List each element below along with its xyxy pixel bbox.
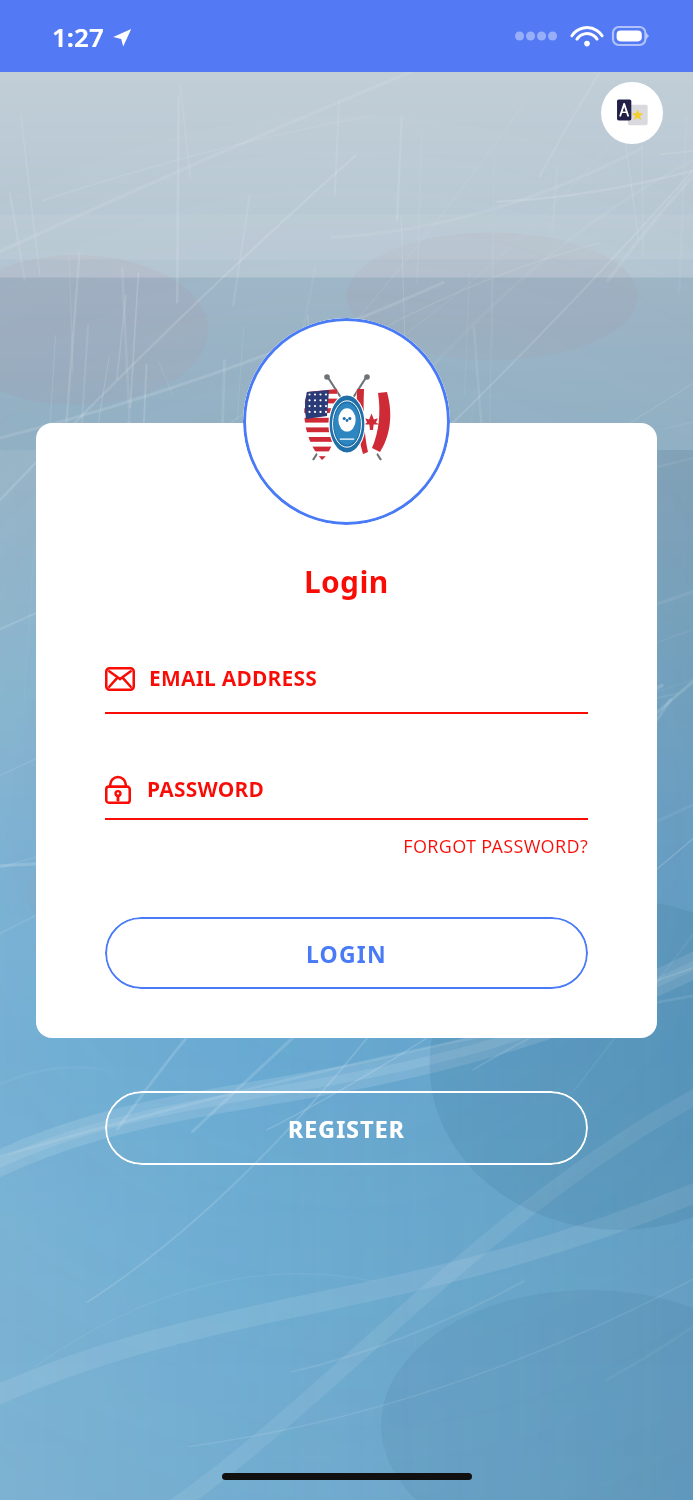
button[interactable]: EMAIL ADDRESS	[105, 664, 588, 714]
staticText: 1:27	[52, 19, 104, 54]
staticText: PASSWORD	[147, 775, 265, 804]
staticText: EMAIL ADDRESS	[149, 664, 318, 693]
staticText: LOGIN	[306, 938, 387, 969]
staticText: Login	[304, 561, 389, 602]
staticText: FORGOT PASSWORD?	[403, 834, 588, 859]
button[interactable]: Translate	[601, 82, 663, 144]
button[interactable]: REGISTER	[105, 1091, 588, 1165]
staticText: REGISTER	[288, 1113, 406, 1144]
button[interactable]: PASSWORD	[105, 774, 588, 820]
button[interactable]: FORGOT PASSWORD?	[403, 830, 588, 863]
button[interactable]: LOGIN	[105, 917, 588, 989]
